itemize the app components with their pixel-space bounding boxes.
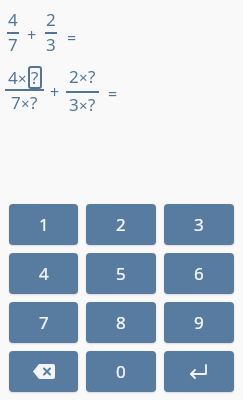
staticText: 4 <box>8 8 18 31</box>
staticText: 3 <box>194 213 204 236</box>
staticText: 9 <box>194 311 204 334</box>
button[interactable] <box>164 351 234 392</box>
staticText: 2 <box>116 213 126 236</box>
staticText: 2 <box>69 65 79 88</box>
staticText: × <box>79 95 88 115</box>
staticText: 7 <box>11 91 21 114</box>
button[interactable]: 5 <box>86 253 156 294</box>
staticText: ? <box>88 93 96 116</box>
button[interactable]: 2 <box>86 204 156 245</box>
staticText: 3 <box>46 33 56 56</box>
staticText: 4 <box>39 262 49 285</box>
staticText: 3 <box>69 93 79 116</box>
staticText: × <box>21 93 30 113</box>
staticText: + <box>27 24 37 46</box>
button[interactable] <box>9 351 78 392</box>
staticText: × <box>79 67 88 87</box>
button[interactable]: 6 <box>164 253 234 294</box>
button[interactable]: 0 <box>86 351 156 392</box>
staticText: 6 <box>194 262 204 285</box>
staticText: 4 <box>8 66 18 89</box>
staticText: ? <box>88 65 96 88</box>
staticText: + <box>50 81 60 103</box>
staticText: = <box>67 27 77 49</box>
button[interactable]: 7 <box>9 302 78 343</box>
staticText: × <box>18 68 27 88</box>
staticText: 1 <box>39 213 49 236</box>
staticText: ? <box>31 66 39 89</box>
button[interactable]: 8 <box>86 302 156 343</box>
staticText: 0 <box>116 360 126 383</box>
button[interactable]: 9 <box>164 302 234 343</box>
staticText: 8 <box>116 311 126 334</box>
button[interactable]: 4 <box>9 253 78 294</box>
button[interactable]: 3 <box>164 204 234 245</box>
staticText: 5 <box>116 262 126 285</box>
staticText: 7 <box>8 33 18 56</box>
staticText: 7 <box>39 311 49 334</box>
staticText: ? <box>30 91 38 114</box>
staticText: = <box>108 83 118 105</box>
staticText: 2 <box>46 8 56 31</box>
button[interactable]: 1 <box>9 204 78 245</box>
